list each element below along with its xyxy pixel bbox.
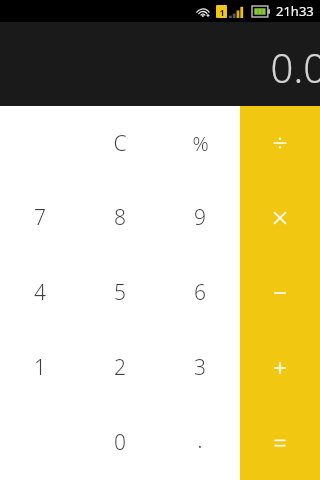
staticText: 1 — [34, 353, 46, 382]
button[interactable]: 2 — [80, 330, 160, 405]
button[interactable]: multiply — [240, 180, 320, 255]
button[interactable]: 1 — [0, 330, 80, 405]
staticText: 9 — [194, 203, 206, 232]
button[interactable]: 8 — [80, 180, 160, 255]
button[interactable]: 3 — [160, 330, 240, 405]
button[interactable]: minus — [240, 255, 320, 330]
staticText: 1 — [219, 6, 225, 18]
staticText: 0 — [114, 428, 126, 457]
button[interactable]: 4 — [0, 255, 80, 330]
button[interactable]: % — [160, 106, 240, 180]
button[interactable]: 7 — [0, 180, 80, 255]
button[interactable]: plus — [240, 330, 320, 405]
button[interactable]: 5 — [80, 255, 160, 330]
button[interactable]: divide — [240, 106, 320, 180]
button[interactable]: . — [160, 405, 240, 480]
staticText: 0.0 — [270, 40, 320, 94]
staticText: 8 — [114, 203, 126, 232]
button[interactable]: equals — [240, 405, 320, 480]
staticText: % — [192, 130, 209, 157]
button[interactable]: 0 — [80, 405, 160, 480]
staticText: . — [197, 424, 203, 454]
button[interactable]: 9 — [160, 180, 240, 255]
staticText: 3 — [194, 353, 206, 382]
staticText: C — [113, 129, 127, 158]
staticText: 7 — [34, 203, 46, 232]
staticText: 2 — [114, 353, 126, 382]
staticText: 6 — [194, 278, 206, 307]
staticText: 5 — [114, 278, 126, 307]
staticText: 4 — [34, 278, 46, 307]
staticText: 21h33 — [276, 2, 314, 20]
button[interactable]: 6 — [160, 255, 240, 330]
button[interactable]: C — [80, 106, 160, 180]
